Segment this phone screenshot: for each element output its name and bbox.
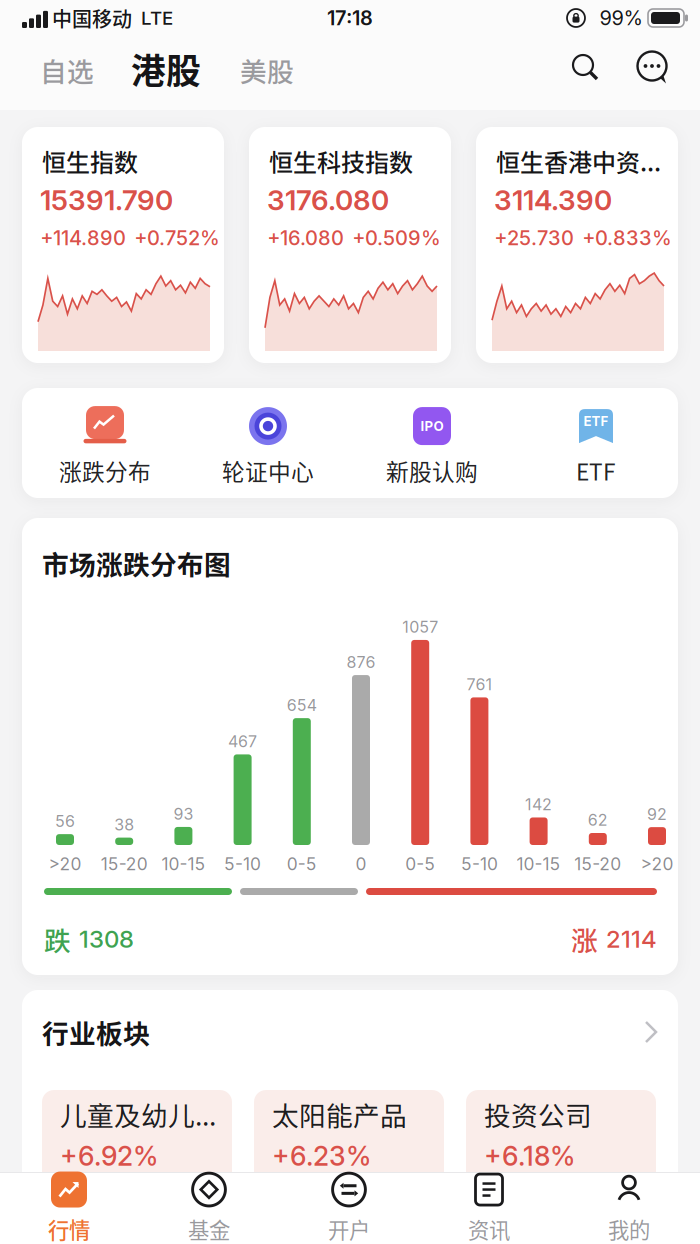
staticText: 太阳能产品 xyxy=(272,1095,407,1133)
staticText: 新股认购 xyxy=(386,454,478,487)
staticText: 涨 xyxy=(571,920,598,958)
button[interactable]: 投资公司 xyxy=(466,1090,656,1210)
button[interactable]: 涨跌分布 xyxy=(40,403,170,489)
staticText: 467 xyxy=(228,732,257,751)
staticText: >20 xyxy=(640,853,673,874)
staticText: +25.730 xyxy=(494,226,574,250)
button[interactable]: 太阳能产品 xyxy=(254,1090,444,1210)
button[interactable]: 轮证中心 xyxy=(203,403,333,489)
staticText: 0-5 xyxy=(287,853,317,874)
staticText: IPO xyxy=(420,418,443,434)
staticText: 儿童及幼儿... xyxy=(60,1095,216,1133)
staticText: 3176.080 xyxy=(267,183,389,217)
staticText: 涨跌分布 xyxy=(59,454,151,487)
staticText: 62 xyxy=(588,810,608,830)
staticText: 投资公司 xyxy=(484,1095,592,1133)
staticText: 中国移动 xyxy=(52,3,132,32)
staticText: 开户 xyxy=(328,1214,370,1244)
staticText: >20 xyxy=(48,853,81,874)
staticText: +0.752% xyxy=(134,226,220,250)
staticText: 市场涨跌分布图 xyxy=(42,544,231,582)
staticText: 38 xyxy=(114,815,134,834)
button[interactable]: 行业板块 xyxy=(22,990,678,1074)
staticText: 15-20 xyxy=(101,853,148,874)
button[interactable]: 基金 xyxy=(159,1173,259,1243)
button[interactable]: 儿童及幼儿... xyxy=(42,1090,232,1210)
staticText: 142 xyxy=(525,795,552,814)
button[interactable]: 行情 xyxy=(19,1173,119,1243)
staticText: 恒生香港中资... xyxy=(496,144,661,178)
staticText: LTE xyxy=(141,7,173,29)
staticText: +16.080 xyxy=(267,226,344,250)
staticText: 我的 xyxy=(608,1214,650,1244)
staticText: 5-10 xyxy=(461,853,498,874)
staticText: 港股 xyxy=(131,44,201,94)
staticText: 基金 xyxy=(188,1214,230,1244)
button[interactable]: ETF xyxy=(531,403,661,489)
staticText: 资讯 xyxy=(468,1214,510,1244)
staticText: 行情 xyxy=(48,1214,90,1244)
staticText: +6.92% xyxy=(60,1140,158,1172)
staticText: ETF xyxy=(583,413,608,429)
staticText: 876 xyxy=(346,652,375,672)
staticText: +114.890 xyxy=(40,226,126,250)
staticText: 自选 xyxy=(40,51,94,89)
staticText: 92 xyxy=(647,804,667,824)
staticText: ETF xyxy=(576,454,616,487)
staticText: 15391.790 xyxy=(40,183,173,217)
button[interactable]: 港股 xyxy=(131,44,201,94)
staticText: 0 xyxy=(355,853,366,874)
staticText: 恒生科技指数 xyxy=(269,144,413,178)
staticText: 轮证中心 xyxy=(222,454,314,487)
button[interactable]: IPO xyxy=(367,403,497,489)
button[interactable]: 恒生科技指数 xyxy=(249,127,451,363)
staticText: 恒生指数 xyxy=(42,144,138,178)
button[interactable]: 自选 xyxy=(40,51,94,89)
button[interactable]: 资讯 xyxy=(439,1173,539,1243)
staticText: 10-15 xyxy=(161,853,205,874)
staticText: +0.509% xyxy=(352,226,441,250)
staticText: +6.23% xyxy=(272,1140,371,1172)
staticText: 15-20 xyxy=(574,853,621,874)
staticText: 761 xyxy=(466,675,492,694)
staticText: 0-5 xyxy=(405,853,435,874)
button[interactable]: 恒生指数 xyxy=(22,127,224,363)
staticText: 56 xyxy=(55,811,75,831)
button[interactable] xyxy=(630,46,674,90)
staticText: 99% xyxy=(599,6,642,30)
button[interactable]: 恒生香港中资... xyxy=(476,127,678,363)
staticText: +0.833% xyxy=(582,226,672,250)
button[interactable]: 开户 xyxy=(299,1173,399,1243)
staticText: 93 xyxy=(173,804,193,824)
staticText: 1308 xyxy=(79,924,134,953)
staticText: 2114 xyxy=(606,924,657,953)
staticText: 1057 xyxy=(402,617,438,637)
staticText: 跌 xyxy=(44,920,71,958)
button[interactable]: 美股 xyxy=(240,51,294,89)
staticText: 3114.390 xyxy=(494,183,612,217)
staticText: +6.18% xyxy=(484,1140,575,1172)
button[interactable] xyxy=(563,48,607,88)
staticText: 行业板块 xyxy=(42,1013,150,1051)
staticText: 美股 xyxy=(240,51,294,89)
staticText: 5-10 xyxy=(224,853,261,874)
button[interactable]: 我的 xyxy=(579,1173,679,1243)
staticText: 654 xyxy=(287,695,317,715)
staticText: 17:18 xyxy=(327,6,373,30)
staticText: 10-15 xyxy=(517,853,561,874)
